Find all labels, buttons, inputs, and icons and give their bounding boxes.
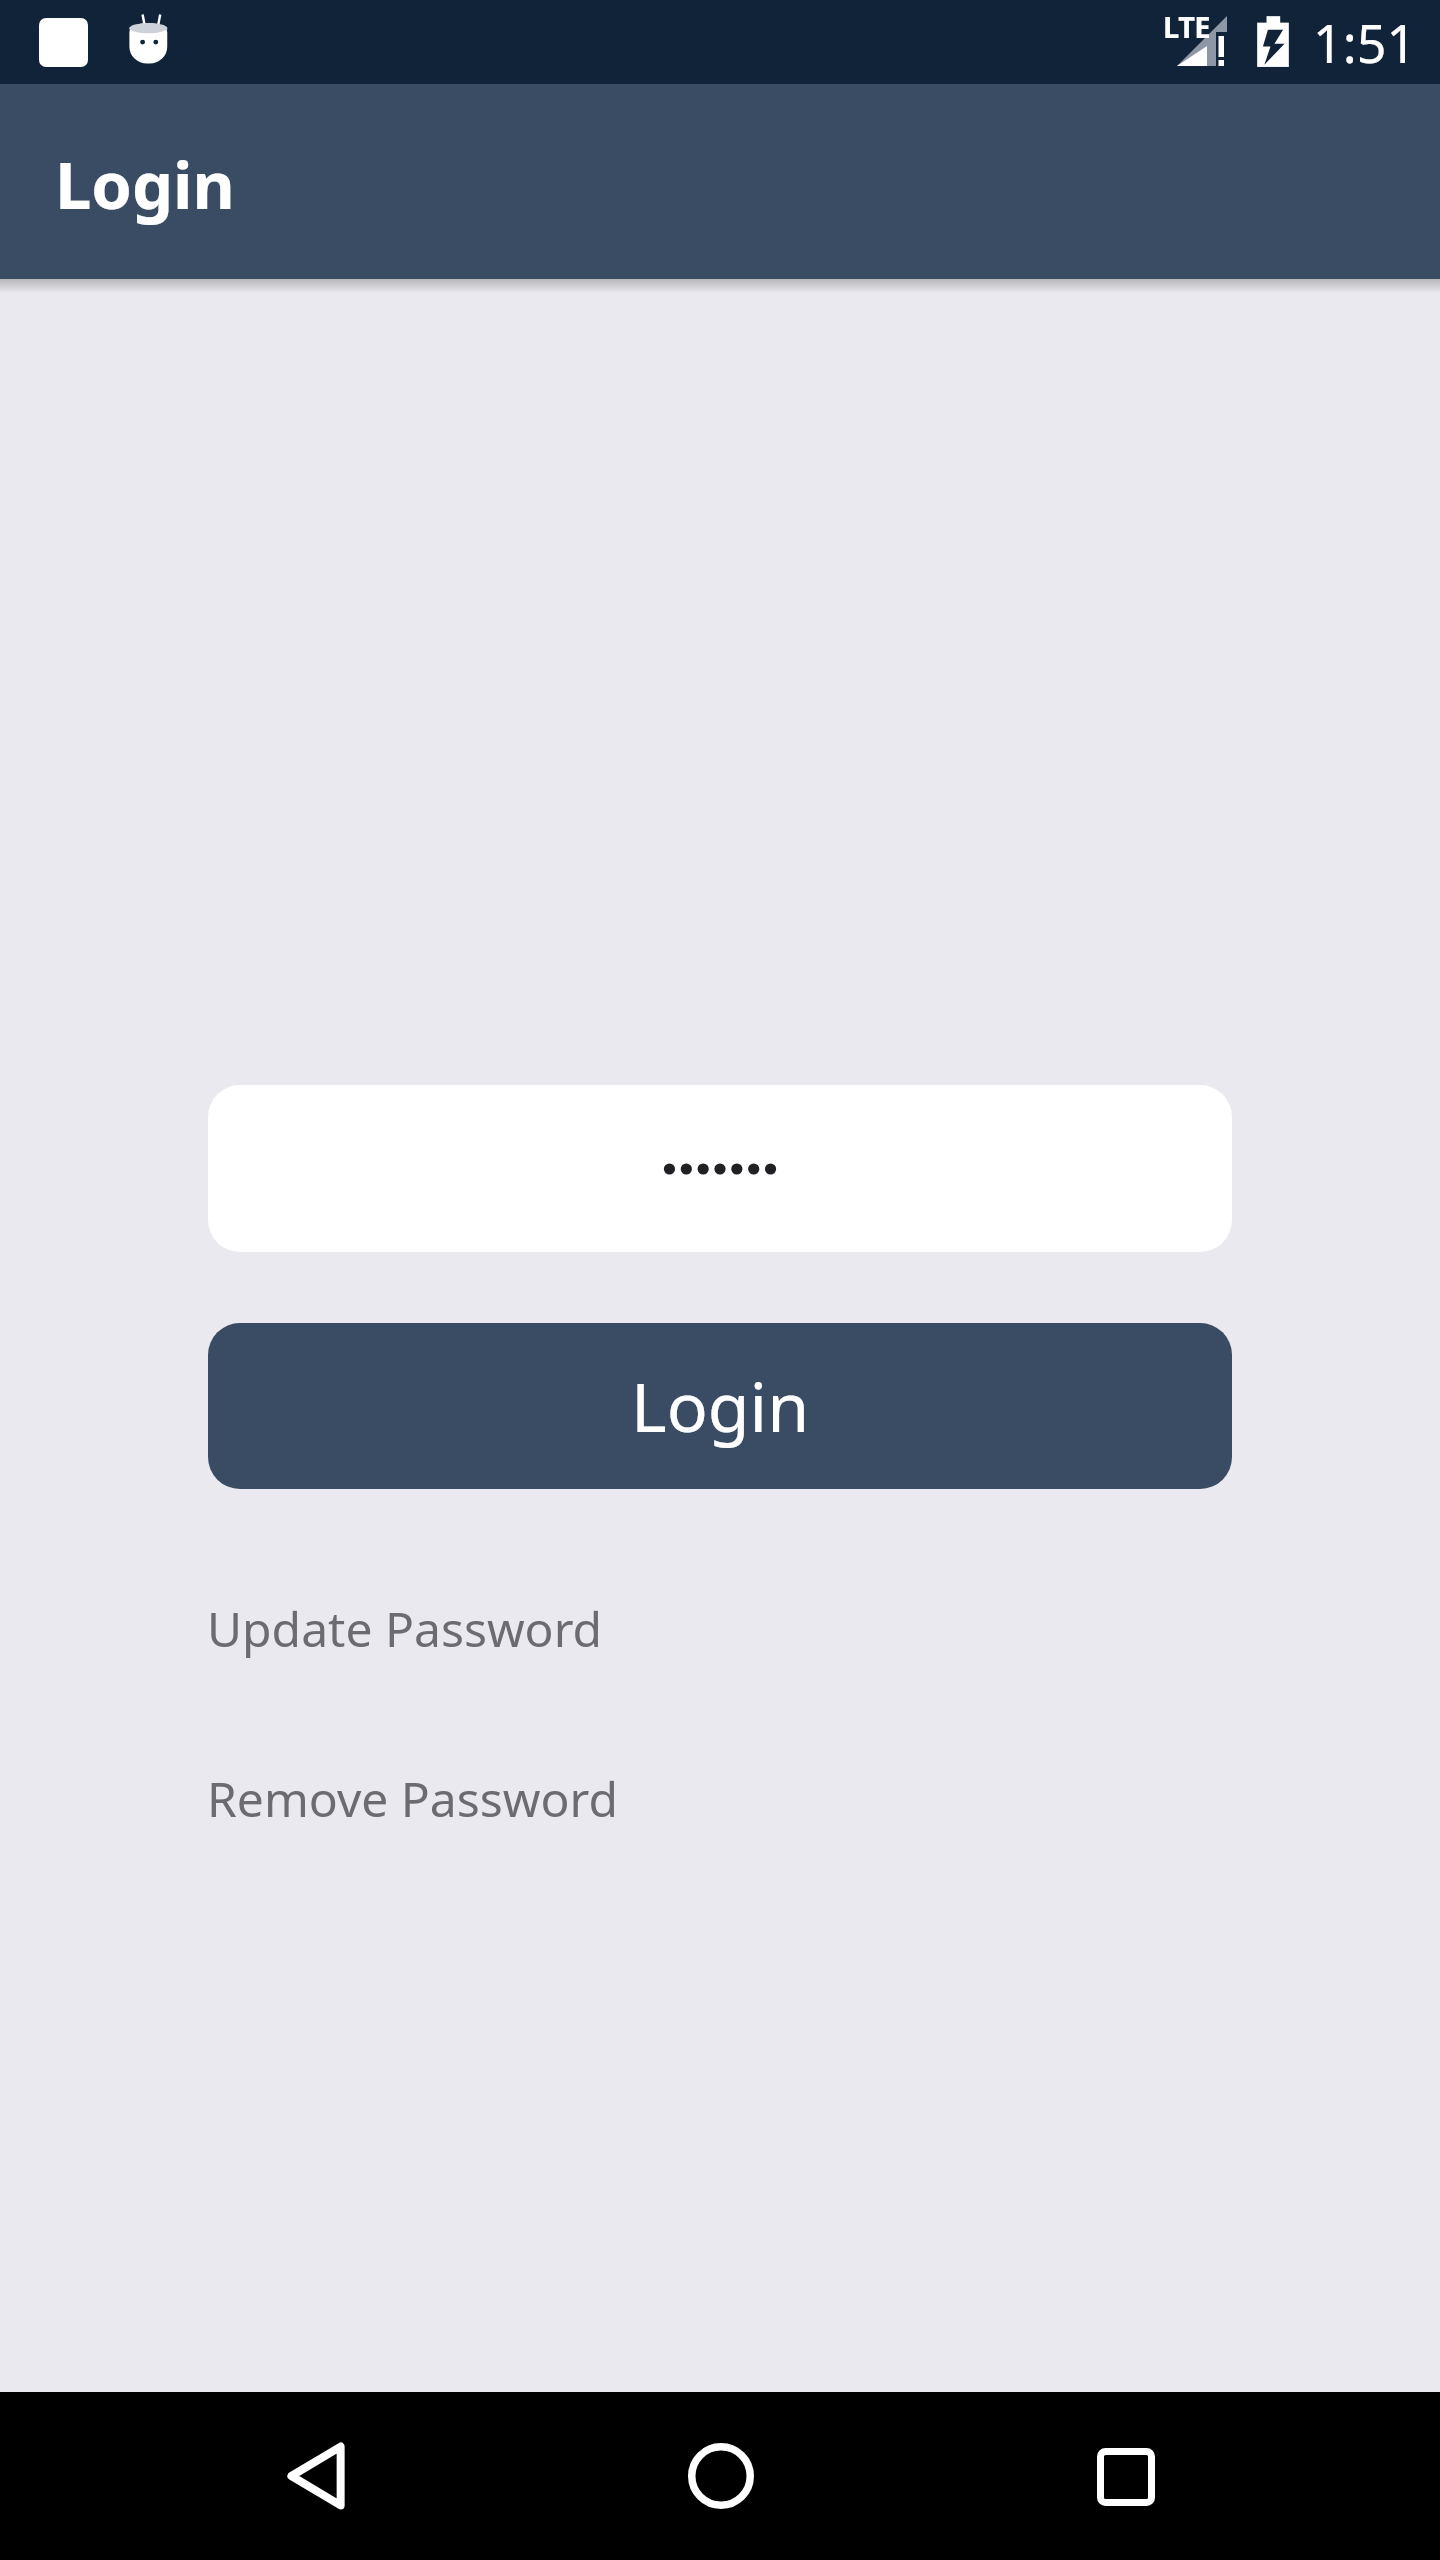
button[interactable]: Home [647, 2402, 795, 2550]
button[interactable] [208, 1085, 1232, 1252]
staticText: Update Password [207, 1596, 603, 1661]
staticText: Login [55, 140, 235, 229]
button[interactable]: Login [208, 1323, 1232, 1489]
button[interactable]: Remove Password [180, 1749, 700, 1849]
staticText: 1:51 [1313, 7, 1417, 78]
staticText: Remove Password [207, 1766, 618, 1831]
button[interactable]: Update Password [180, 1579, 700, 1679]
staticText: Login [631, 1359, 810, 1452]
staticText: LTE [1163, 7, 1211, 46]
button[interactable]: Back [242, 2402, 390, 2550]
button[interactable]: Recents [1052, 2403, 1200, 2551]
